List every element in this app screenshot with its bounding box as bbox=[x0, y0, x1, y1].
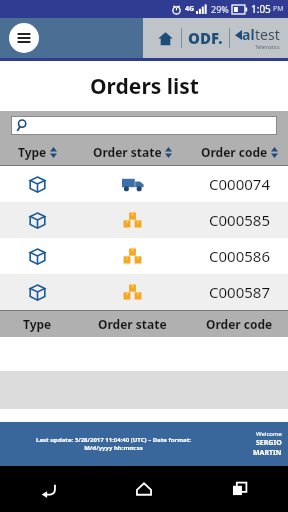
button[interactable]: Order state bbox=[75, 311, 190, 337]
button[interactable]: Order type bbox=[0, 274, 288, 310]
other: Order type bbox=[29, 248, 46, 265]
staticText: Telematics bbox=[255, 44, 280, 51]
button[interactable]: Order state bbox=[75, 139, 190, 165]
staticText: Last update: 3/28/2017 11:04:40 (UTC) – … bbox=[36, 436, 191, 444]
button[interactable]: Order type bbox=[0, 166, 288, 202]
other: Order type bbox=[29, 284, 46, 301]
staticText: 1:05 bbox=[251, 2, 271, 16]
button[interactable]: Type bbox=[0, 311, 75, 337]
staticText: SERGIO bbox=[256, 438, 282, 448]
staticText: MARTIN bbox=[253, 448, 282, 458]
button[interactable]: Type bbox=[0, 139, 75, 165]
other: Prepared bbox=[123, 284, 142, 300]
button[interactable]: Order code bbox=[190, 311, 288, 337]
other: In transit bbox=[122, 177, 144, 192]
button[interactable]: Recent apps bbox=[192, 466, 288, 512]
button[interactable]: Order type bbox=[0, 238, 288, 274]
button[interactable]: Home bbox=[96, 466, 192, 512]
staticText: al bbox=[242, 25, 255, 44]
other: Order type bbox=[29, 176, 46, 193]
staticText: Welcome bbox=[256, 430, 282, 438]
staticText: C000586 bbox=[209, 246, 270, 266]
button[interactable] bbox=[11, 116, 277, 135]
staticText: PM bbox=[273, 4, 284, 14]
button[interactable]: Order type bbox=[0, 202, 288, 238]
staticText: Order code bbox=[206, 316, 273, 332]
staticText: C000074 bbox=[209, 174, 270, 194]
button[interactable]: Home bbox=[155, 28, 175, 48]
staticText: Orders list bbox=[90, 72, 199, 101]
staticText: test bbox=[255, 25, 280, 44]
staticText: Type bbox=[23, 316, 52, 332]
staticText: ODF. bbox=[188, 28, 223, 48]
button[interactable]: Back bbox=[0, 466, 96, 512]
staticText: Type bbox=[18, 144, 47, 160]
staticText: Order state bbox=[93, 144, 162, 160]
button[interactable]: Menu bbox=[9, 23, 39, 53]
button[interactable]: Order code bbox=[190, 139, 288, 165]
staticText: C000585 bbox=[209, 210, 270, 230]
staticText: Order state bbox=[98, 316, 167, 332]
staticText: 4G bbox=[185, 4, 195, 14]
other: Order type bbox=[29, 212, 46, 229]
staticText: Order code bbox=[201, 144, 268, 160]
other: Prepared bbox=[123, 212, 142, 228]
staticText: C000587 bbox=[209, 282, 270, 302]
other: Prepared bbox=[123, 248, 142, 264]
staticText: 29% bbox=[211, 3, 229, 15]
staticText: M/d/yyyy hh:mm:ss bbox=[84, 444, 143, 452]
